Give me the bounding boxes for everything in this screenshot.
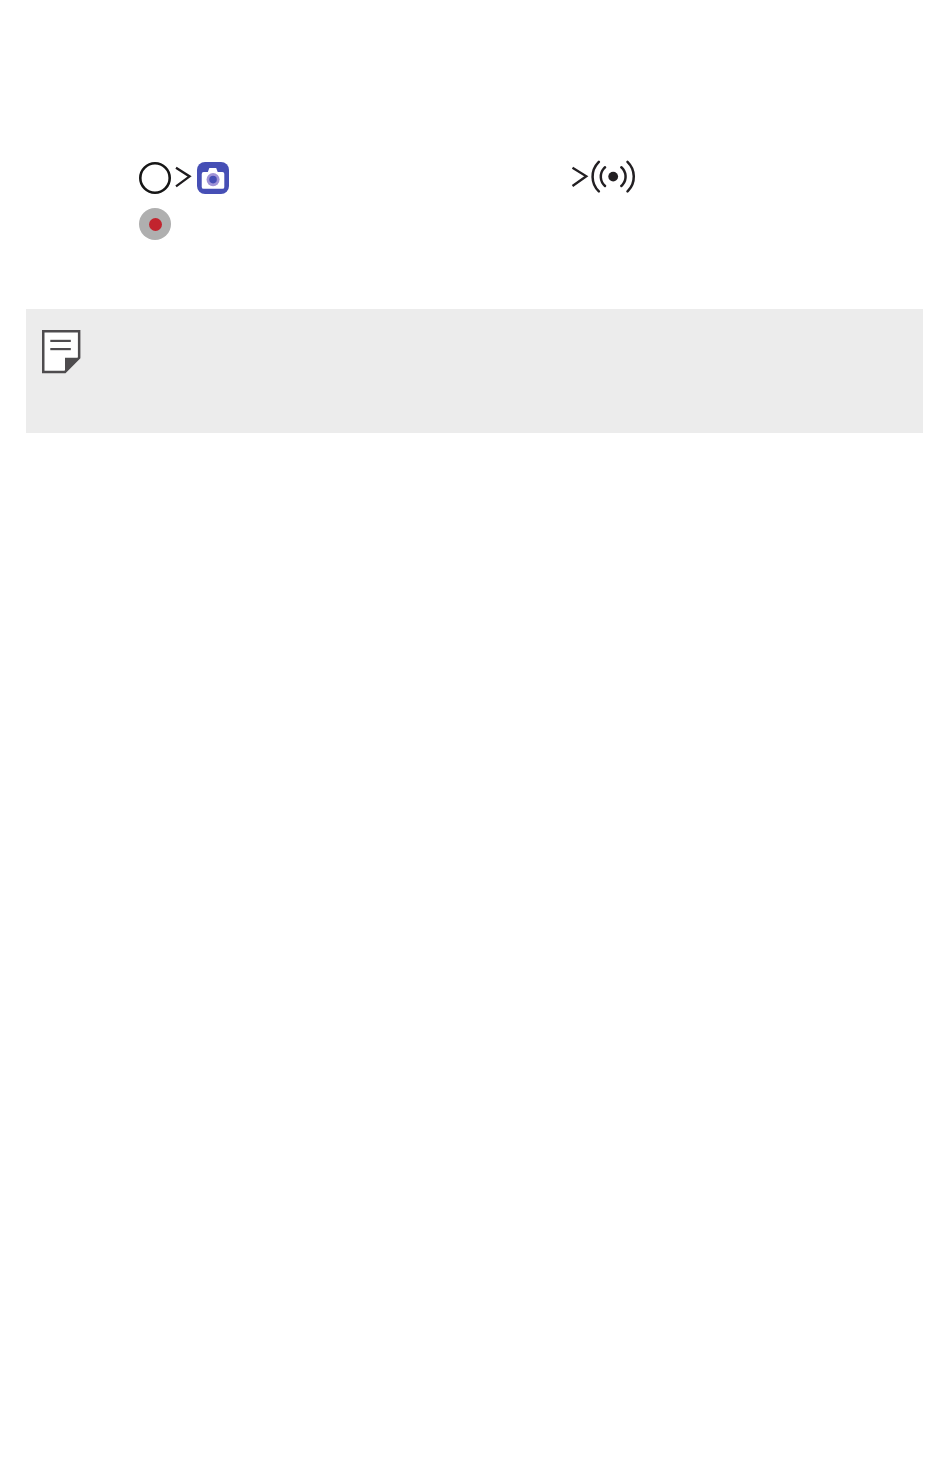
button[interactable]: No photo selected xyxy=(139,162,171,194)
button[interactable]: Next xyxy=(173,165,192,188)
button[interactable]: Next xyxy=(571,165,589,188)
button[interactable]: Sensors xyxy=(590,159,636,194)
button[interactable]: Record xyxy=(139,208,171,240)
other: Note xyxy=(42,330,81,374)
button[interactable]: Camera xyxy=(197,162,229,194)
button[interactable]: Note xyxy=(26,309,923,433)
